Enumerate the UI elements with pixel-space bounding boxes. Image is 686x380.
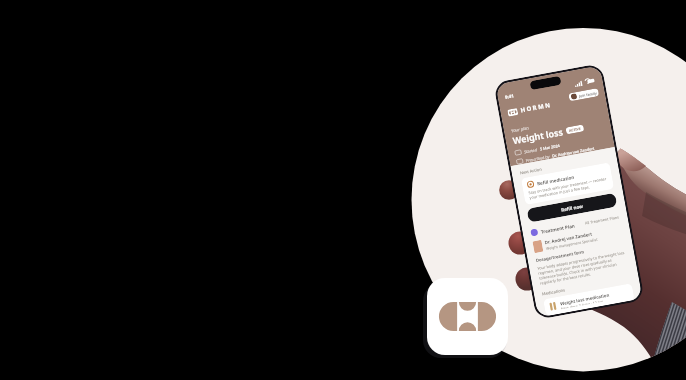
button[interactable]: Join family: [568, 88, 599, 101]
staticText: Join family: [578, 90, 597, 99]
staticText: Your plan: [511, 125, 529, 133]
staticText: Prescribed by: [525, 154, 551, 163]
staticText: Weight management Specialist: [545, 237, 598, 251]
staticText: Next Action: [519, 166, 543, 176]
staticText: Weight loss: [512, 125, 564, 146]
staticText: Dr. Andrew van Zandert: [552, 146, 595, 158]
staticText: Dosage/treatment form: [535, 249, 585, 264]
staticText: Dr. Andrej van Zandert: [544, 231, 592, 245]
staticText: ACTIVE: [568, 126, 581, 133]
button[interactable]: HORMN app icon: [427, 278, 508, 355]
staticText: HORMN: [520, 101, 553, 114]
staticText: Treatment Plan: [540, 222, 576, 235]
staticText: Next dose 2.4 mg · 12 Jun: [561, 299, 603, 309]
staticText: All Treatment Plans: [584, 214, 620, 226]
button[interactable]: Weight loss medication: [543, 283, 635, 316]
button[interactable]: Refill now: [526, 193, 617, 223]
staticText: 9:41: [504, 92, 514, 100]
staticText: Refill now: [561, 203, 583, 213]
staticText: 5 Mar 2024: [539, 143, 561, 151]
staticText: Medications: [542, 287, 566, 297]
staticText: Refill medication: [536, 174, 575, 187]
staticText: Weight loss medication: [559, 291, 610, 306]
staticText: Your body adapts progressively to the we…: [537, 250, 629, 286]
button[interactable]: Refill medication: [521, 162, 614, 205]
staticText: Started: [524, 147, 538, 154]
staticText: Stay on track with your treatment — reor…: [528, 176, 609, 200]
